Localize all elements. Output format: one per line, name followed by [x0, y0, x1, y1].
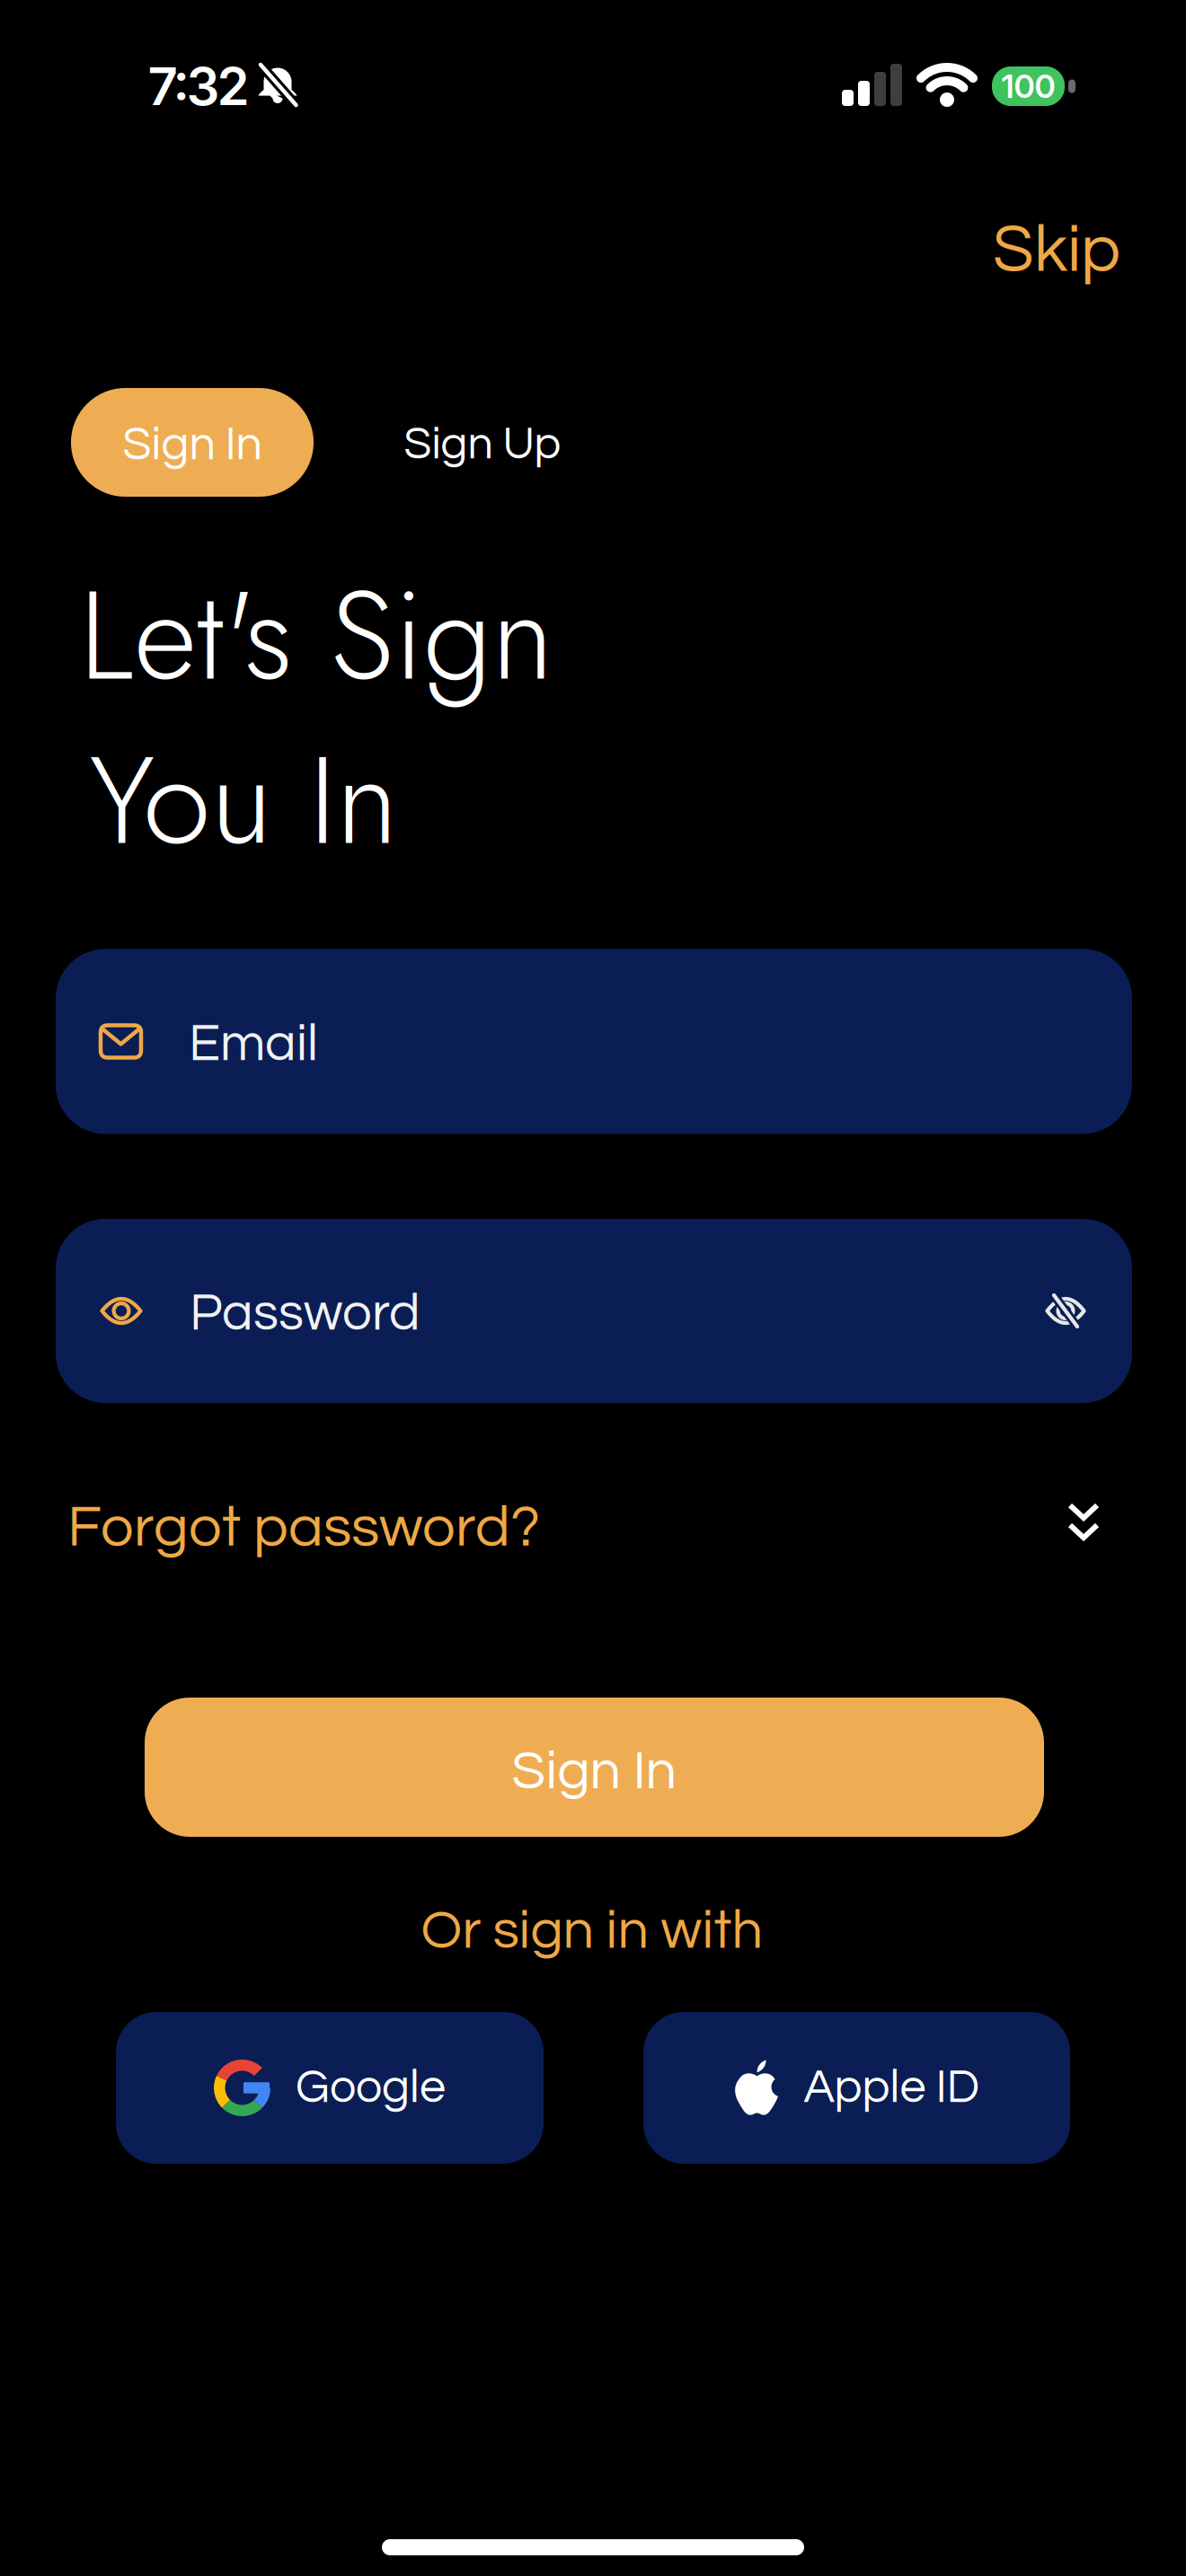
staticText: Sign Up [404, 421, 561, 468]
staticText: You In [89, 711, 398, 889]
button[interactable]: Sign In [145, 1698, 1044, 1837]
staticText: Sign In [512, 1743, 677, 1800]
staticText: Google [296, 2064, 446, 2112]
staticText: 7:32 [148, 55, 249, 118]
staticText: Apple ID [804, 2064, 980, 2112]
staticText: Email [189, 1017, 318, 1071]
staticText: Let's Sign [79, 547, 553, 725]
button[interactable]: Forgot password? [67, 1498, 696, 1558]
button[interactable]: Skip [851, 216, 1120, 285]
staticText: 100 [1001, 67, 1055, 106]
button[interactable]: Google [116, 2012, 544, 2164]
staticText: Skip [993, 216, 1120, 285]
staticText: Password [190, 1287, 420, 1340]
button[interactable]: Apple ID [643, 2012, 1070, 2164]
staticText: Or sign in with [421, 1903, 763, 1959]
button[interactable]: Email [56, 949, 1132, 1134]
staticText: Sign In [123, 421, 262, 469]
button[interactable]: Sign In [71, 388, 314, 497]
button[interactable]: Sign Up [404, 421, 561, 468]
button[interactable]: Password [56, 1219, 1132, 1403]
button[interactable] [1067, 1503, 1100, 1542]
staticText: Forgot password? [67, 1498, 540, 1558]
